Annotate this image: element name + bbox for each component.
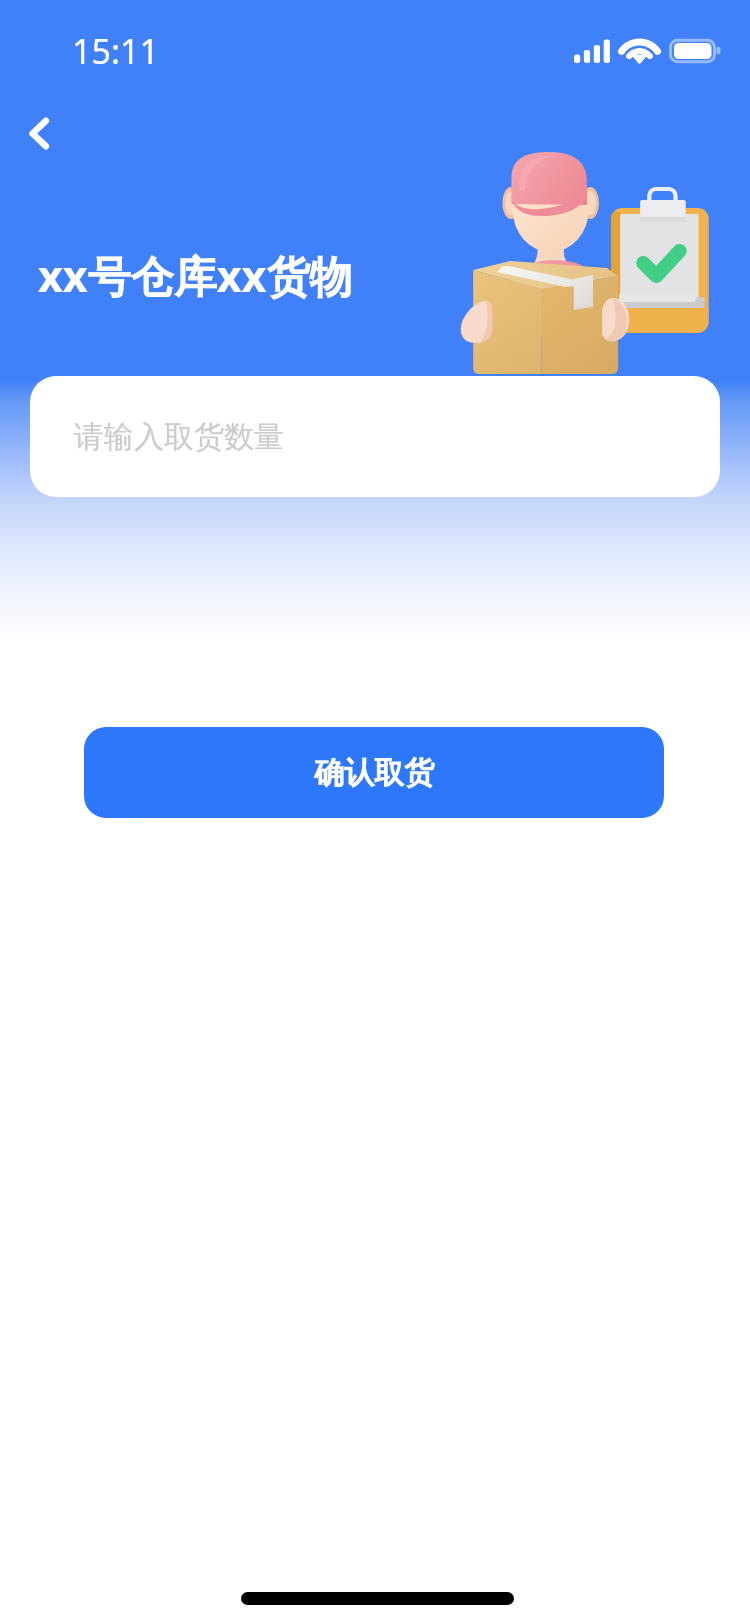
button[interactable]: Back xyxy=(0,94,78,172)
staticText: 15:11 xyxy=(72,28,159,74)
staticText: 请输入取货数量 xyxy=(74,418,284,456)
button[interactable]: 请输入取货数量 xyxy=(30,376,720,497)
staticText: xx号仓库xx货物 xyxy=(38,246,353,305)
staticText: 确认取货 xyxy=(314,754,434,792)
button[interactable]: 确认取货 xyxy=(84,727,664,818)
